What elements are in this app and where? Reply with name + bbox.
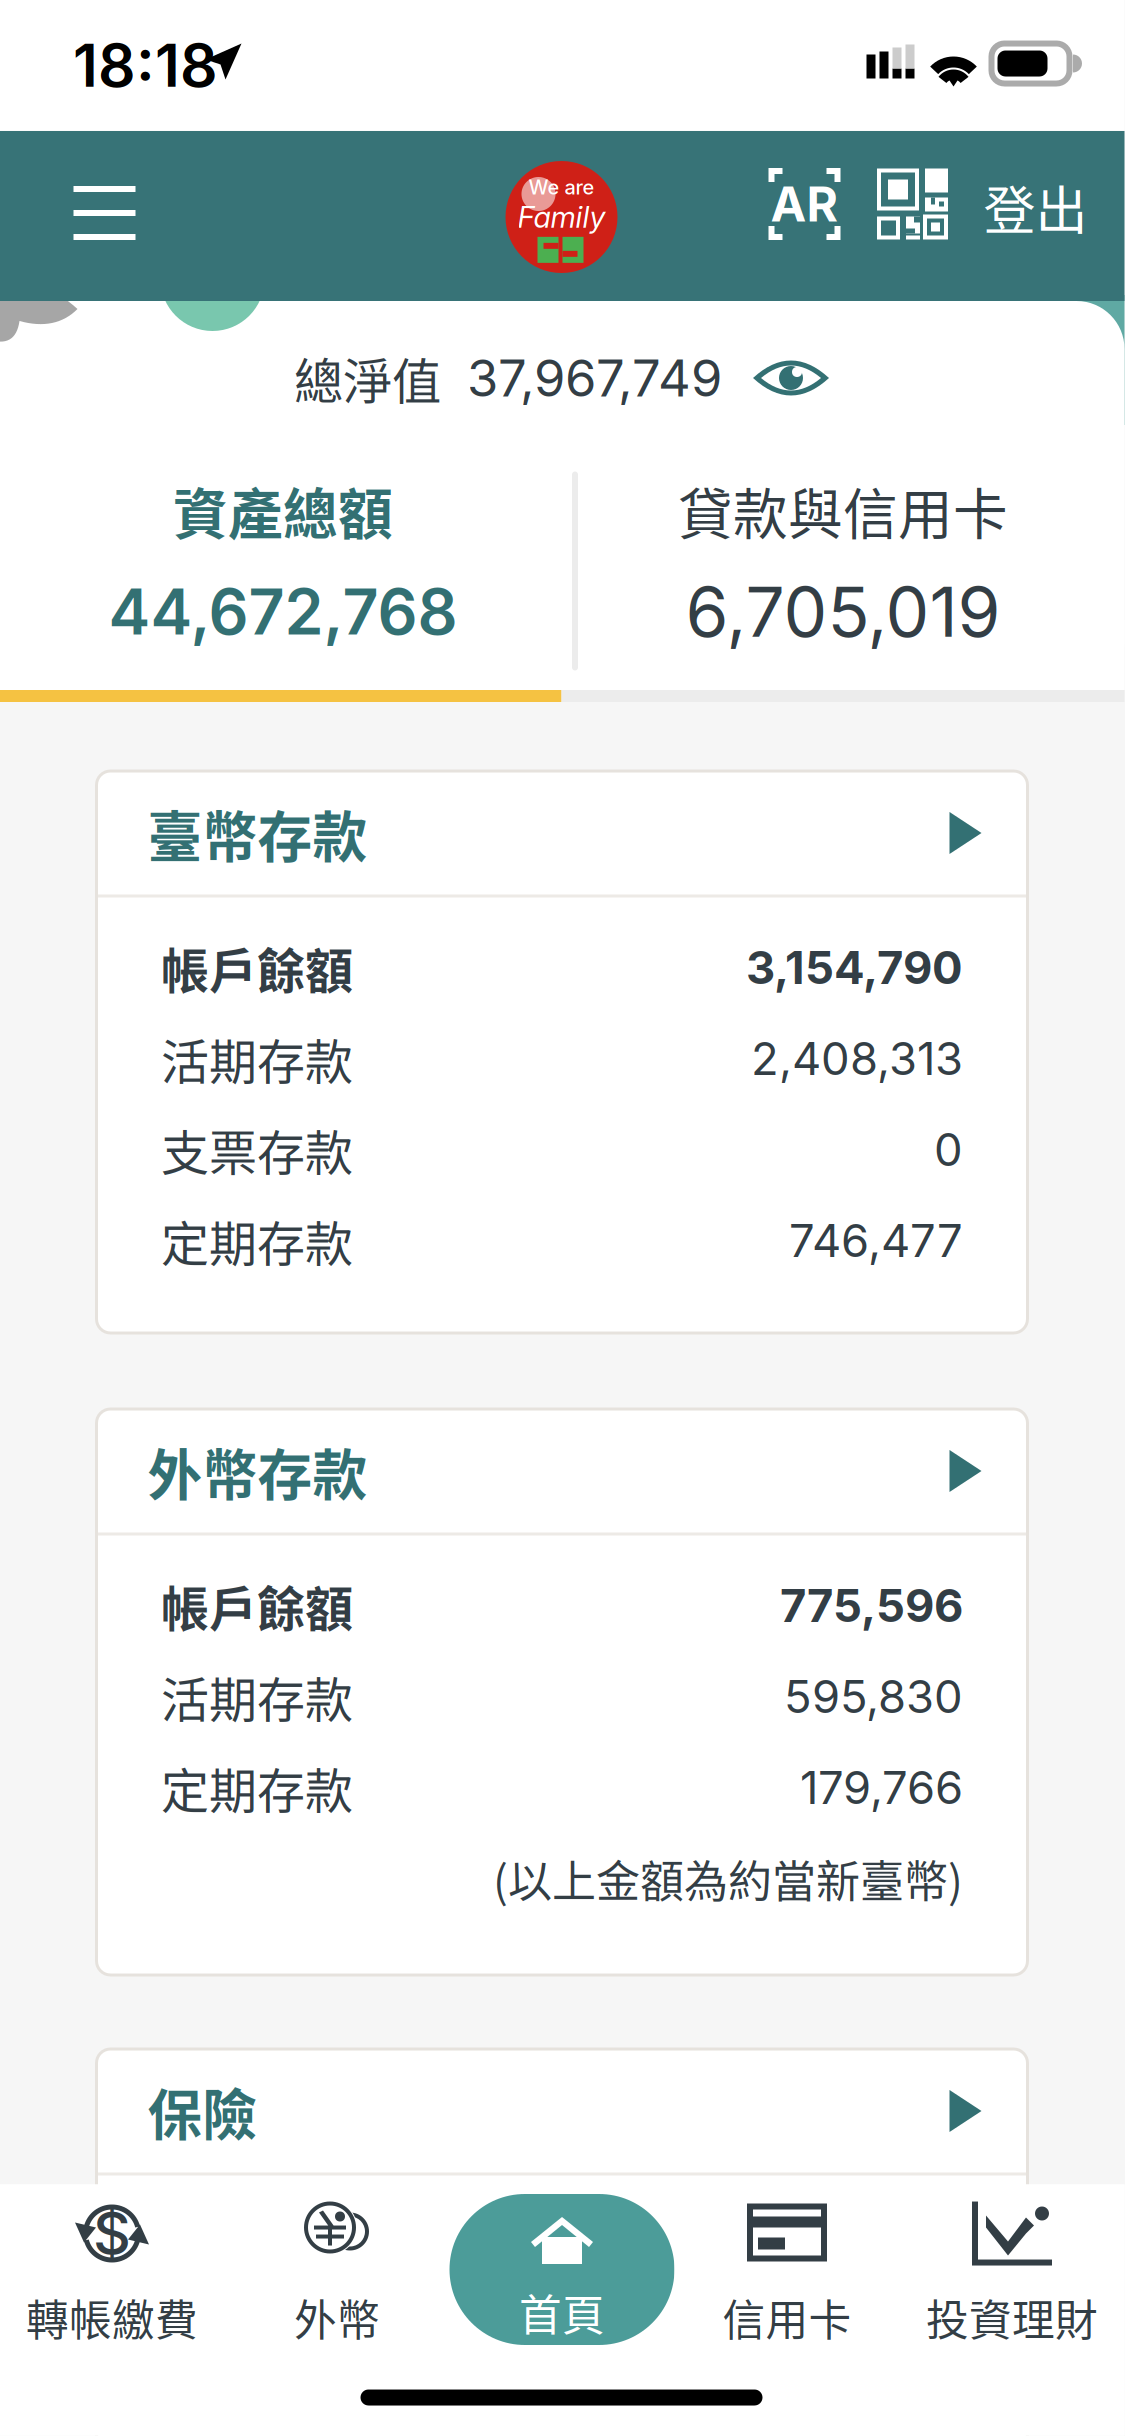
staticText: AR: [770, 175, 838, 233]
staticText: 保險: [147, 2071, 257, 2151]
staticText: 0: [934, 1122, 963, 1177]
button[interactable]: Toggle balance visibility: [284, 332, 840, 424]
staticText: $: [93, 2198, 131, 2269]
button[interactable]: 投資理財: [899, 2184, 1124, 2435]
button[interactable]: Menu: [47, 160, 161, 266]
staticText: 活期存款: [161, 1024, 353, 1093]
staticText: We are: [528, 175, 594, 199]
staticText: 首頁: [519, 2282, 605, 2343]
staticText: (以上金額為約當新臺幣): [493, 1847, 963, 1910]
staticText: 定期存款: [161, 1753, 353, 1822]
staticText: 登出: [983, 169, 1087, 245]
staticText: 2,408,313: [751, 1031, 963, 1086]
staticText: 18:18: [73, 30, 218, 101]
staticText: 外幣存款: [147, 1431, 367, 1511]
button[interactable]: 臺幣存款: [147, 770, 981, 895]
staticText: 6,705,019: [685, 570, 1000, 653]
staticText: 3,154,790: [746, 940, 963, 995]
staticText: 定期存款: [161, 1206, 353, 1275]
staticText: 外幣: [294, 2287, 380, 2348]
staticText: 總淨值: [294, 342, 441, 414]
button[interactable]: $: [0, 2184, 224, 2435]
button[interactable]: 登出: [973, 159, 1097, 255]
button[interactable]: 資產總額: [100, 462, 465, 657]
button[interactable]: 信用卡: [674, 2184, 899, 2435]
staticText: 44,672,768: [108, 574, 457, 649]
button[interactable]: 外幣: [224, 2184, 449, 2435]
button[interactable]: 首頁: [449, 2184, 674, 2435]
staticText: 投資理財: [926, 2287, 1098, 2348]
button[interactable]: Scan QR code: [865, 156, 960, 251]
staticText: 595,830: [784, 1669, 963, 1724]
button[interactable]: 外幣存款: [147, 1408, 981, 1533]
staticText: 37,967,749: [467, 347, 722, 409]
button[interactable]: 保險: [147, 2048, 981, 2173]
staticText: Family: [517, 199, 605, 235]
button[interactable]: AR: [756, 156, 852, 252]
staticText: 746,477: [789, 1213, 963, 1268]
staticText: 轉帳繳費: [26, 2287, 198, 2348]
staticText: 775,596: [780, 1578, 963, 1633]
staticText: 支票存款: [161, 1115, 353, 1184]
staticText: 臺幣存款: [147, 793, 367, 873]
staticText: 179,766: [800, 1760, 963, 1815]
staticText: 帳戶餘額: [161, 1571, 353, 1640]
staticText: 信用卡: [722, 2287, 851, 2348]
button[interactable]: 貸款與信用卡: [670, 462, 1016, 661]
staticText: 資產總額: [173, 470, 393, 550]
staticText: 活期存款: [161, 1662, 353, 1731]
staticText: 貸款與信用卡: [678, 470, 1008, 550]
staticText: 帳戶餘額: [161, 933, 353, 1002]
button[interactable]: CTBC We are Family: [505, 161, 617, 273]
